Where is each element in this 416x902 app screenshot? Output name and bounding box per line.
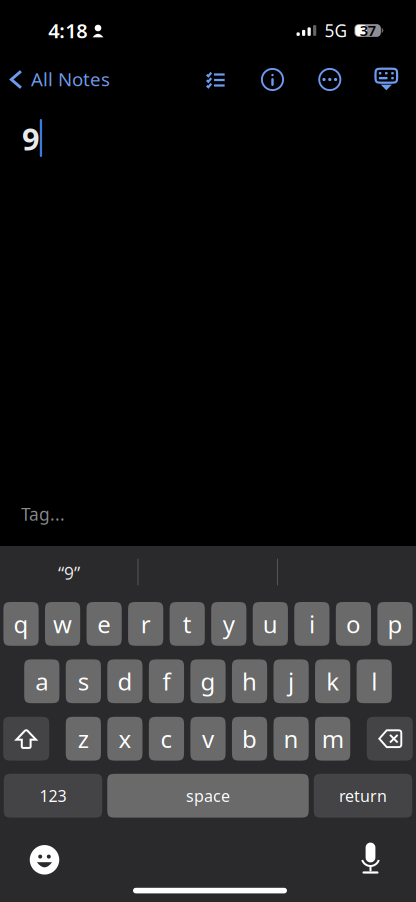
staticText: Tag...	[21, 502, 65, 525]
staticText: f	[162, 665, 170, 697]
button[interactable]: w	[45, 602, 80, 646]
button[interactable]: k	[315, 659, 350, 703]
staticText: x	[118, 723, 131, 755]
button[interactable]: Tag...	[0, 498, 89, 530]
button[interactable]: Dictate	[345, 838, 395, 882]
button[interactable]: t	[170, 602, 205, 646]
button[interactable]: s	[66, 659, 101, 703]
staticText: k	[326, 665, 339, 697]
staticText: All Notes	[31, 67, 110, 91]
button[interactable]: u	[253, 602, 288, 646]
button[interactable]: space	[107, 774, 309, 818]
staticText: g	[200, 665, 215, 697]
button[interactable]: p	[377, 602, 413, 646]
button[interactable]: 123	[4, 774, 102, 818]
staticText: e	[97, 608, 111, 640]
button[interactable]: c	[149, 717, 184, 761]
button[interactable]: h	[232, 659, 267, 703]
button[interactable]: Info	[250, 57, 294, 101]
staticText: r	[141, 608, 151, 640]
button[interactable]: f	[149, 659, 184, 703]
button[interactable]: i	[294, 602, 329, 646]
staticText: q	[13, 608, 28, 640]
staticText: h	[242, 665, 257, 697]
staticText: b	[242, 723, 257, 755]
staticText: 5G	[324, 19, 347, 42]
button[interactable]: a	[24, 659, 59, 703]
button[interactable]: More	[308, 57, 352, 101]
button[interactable]: g	[190, 659, 226, 703]
button[interactable]: d	[107, 659, 142, 703]
staticText: v	[202, 723, 214, 755]
button[interactable]: n	[273, 717, 309, 761]
staticText: 9	[22, 118, 40, 159]
button[interactable]: o	[336, 602, 371, 646]
staticText: i	[309, 608, 315, 640]
staticText: 123	[39, 785, 66, 806]
staticText: o	[346, 608, 361, 640]
staticText: j	[288, 665, 294, 697]
button[interactable]: Shift	[3, 717, 49, 761]
button[interactable]: Emoji	[19, 838, 69, 882]
button[interactable]: q	[3, 602, 39, 646]
button[interactable]: j	[273, 659, 309, 703]
staticText: 37	[360, 21, 376, 40]
staticText: d	[117, 665, 132, 697]
button[interactable]: Delete	[367, 717, 413, 761]
button[interactable]: l	[357, 659, 392, 703]
staticText: u	[263, 608, 278, 640]
staticText: c	[160, 723, 172, 755]
staticText: p	[387, 608, 402, 640]
button[interactable]: x	[107, 717, 142, 761]
staticText: l	[371, 665, 377, 697]
staticText: return	[339, 785, 387, 806]
button[interactable]: b	[232, 717, 267, 761]
button[interactable]: “9”	[0, 546, 138, 600]
button[interactable]: Hide Keyboard	[364, 57, 408, 101]
button[interactable]: return	[314, 774, 412, 818]
staticText: w	[53, 608, 72, 640]
button[interactable]: v	[190, 717, 226, 761]
staticText: space	[186, 785, 230, 806]
button[interactable]: All Notes	[0, 57, 130, 101]
button[interactable]: r	[128, 602, 163, 646]
button[interactable]: Checklist	[193, 57, 237, 101]
staticText: z	[78, 723, 89, 755]
button[interactable]: z	[66, 717, 101, 761]
button[interactable]: m	[315, 717, 350, 761]
staticText: 4:18	[48, 17, 87, 44]
staticText: n	[284, 723, 299, 755]
staticText: s	[78, 665, 89, 697]
staticText: t	[183, 608, 192, 640]
staticText: y	[223, 608, 235, 640]
staticText: a	[35, 665, 48, 697]
button[interactable]: y	[211, 602, 246, 646]
staticText: “9”	[58, 561, 80, 584]
staticText: m	[322, 723, 344, 755]
button[interactable]: e	[86, 602, 122, 646]
